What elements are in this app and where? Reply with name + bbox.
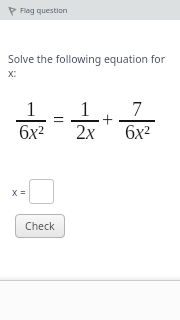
- staticText: =: [53, 109, 65, 131]
- staticText: 1: [80, 98, 90, 120]
- staticText: Flag question: [20, 5, 68, 15]
- staticText: 2x: [76, 121, 95, 141]
- button[interactable]: Check: [15, 214, 65, 238]
- staticText: Check: [25, 219, 55, 233]
- staticText: Solve the following equation for x:: [8, 52, 166, 80]
- button[interactable]: Flag question: [0, 0, 180, 20]
- staticText: x =: [12, 185, 29, 199]
- button[interactable]: [29, 179, 54, 204]
- staticText: 7: [132, 98, 142, 120]
- staticText: 1: [26, 98, 36, 120]
- staticText: 6x²: [125, 121, 150, 141]
- staticText: 6x²: [19, 121, 44, 141]
- staticText: +: [102, 109, 114, 131]
